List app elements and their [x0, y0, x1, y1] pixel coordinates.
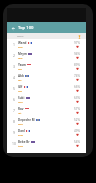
- staticText: 4: [13, 75, 15, 80]
- button[interactable]: 5: [7, 83, 86, 94]
- staticText: pop: [18, 45, 23, 48]
- staticText: Mrym: [18, 52, 27, 56]
- staticText: ind: [18, 67, 22, 70]
- staticText: dis: [18, 78, 22, 81]
- button[interactable]: Trophy: [77, 34, 82, 39]
- staticText: Top 100: [18, 25, 34, 31]
- staticText: jazz: [18, 56, 23, 59]
- staticText: wav: [18, 122, 23, 125]
- button[interactable]: 8: [7, 116, 86, 127]
- button[interactable]: 2: [7, 50, 86, 61]
- staticText: WEEK: [17, 34, 24, 37]
- staticText: 52%: [74, 118, 80, 122]
- staticText: 10: [12, 141, 16, 146]
- button[interactable]: 1: [7, 39, 86, 50]
- staticText: Bebe Br: [18, 140, 30, 144]
- staticText: 7: [13, 108, 15, 113]
- staticText: soul: [18, 133, 23, 136]
- staticText: 9: [13, 130, 15, 135]
- staticText: 2: [13, 53, 15, 58]
- staticText: Rav: [18, 107, 24, 111]
- staticText: 8: [13, 119, 15, 124]
- staticText: 54%: [74, 140, 80, 144]
- staticText: Depeche M: [18, 118, 35, 122]
- button[interactable]: 9: [7, 127, 86, 138]
- staticText: Wand: [18, 41, 27, 45]
- staticText: Danl: [18, 129, 25, 133]
- staticText: rap: [18, 89, 22, 92]
- button[interactable]: 4: [7, 72, 86, 83]
- staticText: 66%: [74, 85, 80, 89]
- staticText: 1: [13, 42, 15, 47]
- button[interactable]: 3: [7, 61, 86, 72]
- staticText: 3: [13, 64, 15, 69]
- staticText: 63%: [74, 96, 80, 100]
- button[interactable]: Navigate up: [9, 24, 17, 32]
- staticText: Glf: [18, 85, 23, 89]
- staticText: Yasm: [18, 63, 26, 67]
- staticText: 5: [13, 86, 15, 91]
- staticText: 94%: [74, 52, 80, 56]
- staticText: hou: [18, 100, 23, 103]
- button[interactable]: 6: [7, 94, 86, 105]
- staticText: 97%: [74, 41, 80, 45]
- staticText: lat: [18, 111, 22, 114]
- button[interactable]: 10: [7, 138, 86, 149]
- staticText: trap: [18, 144, 24, 147]
- staticText: 57%: [74, 107, 80, 111]
- staticText: 74%: [74, 74, 80, 78]
- staticText: Abb: [18, 74, 24, 78]
- staticText: 89%: [74, 63, 80, 67]
- staticText: 49%: [74, 129, 80, 133]
- staticText: Suki: [18, 96, 25, 100]
- staticText: 6: [13, 97, 15, 102]
- button[interactable]: 7: [7, 105, 86, 116]
